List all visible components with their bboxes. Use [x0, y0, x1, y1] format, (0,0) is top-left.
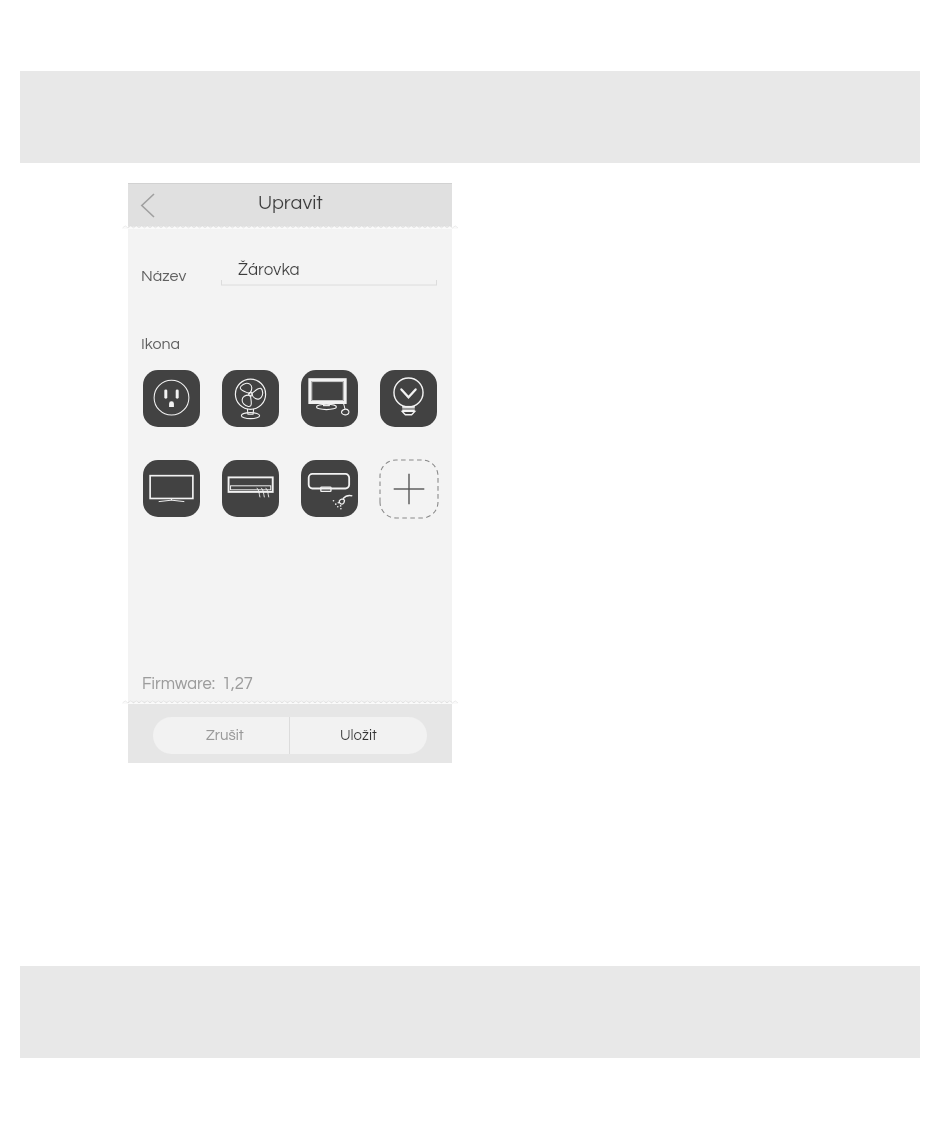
- button[interactable]: Back: [128, 183, 170, 225]
- staticText: Název: [141, 268, 187, 284]
- staticText: Ikona: [141, 336, 181, 352]
- button[interactable]: Žárovka: [221, 254, 437, 286]
- button[interactable]: Add icon: [379, 459, 439, 519]
- button[interactable]: Water heater: [301, 460, 358, 517]
- staticText: Zrušit: [206, 728, 244, 743]
- button[interactable]: Television: [143, 460, 200, 517]
- button[interactable]: Fan: [222, 370, 279, 427]
- staticText: Firmware: 1,27: [142, 675, 253, 692]
- button[interactable]: Uložit: [290, 717, 427, 754]
- staticText: Upravit: [258, 193, 323, 214]
- button[interactable]: Outlet: [143, 370, 200, 427]
- button[interactable]: Light bulb: [380, 370, 437, 427]
- button[interactable]: Computer: [301, 370, 358, 427]
- button[interactable]: Zrušit: [153, 717, 289, 754]
- staticText: Uložit: [340, 728, 377, 743]
- button[interactable]: Air conditioner: [222, 460, 279, 517]
- staticText: Žárovka: [238, 261, 300, 279]
